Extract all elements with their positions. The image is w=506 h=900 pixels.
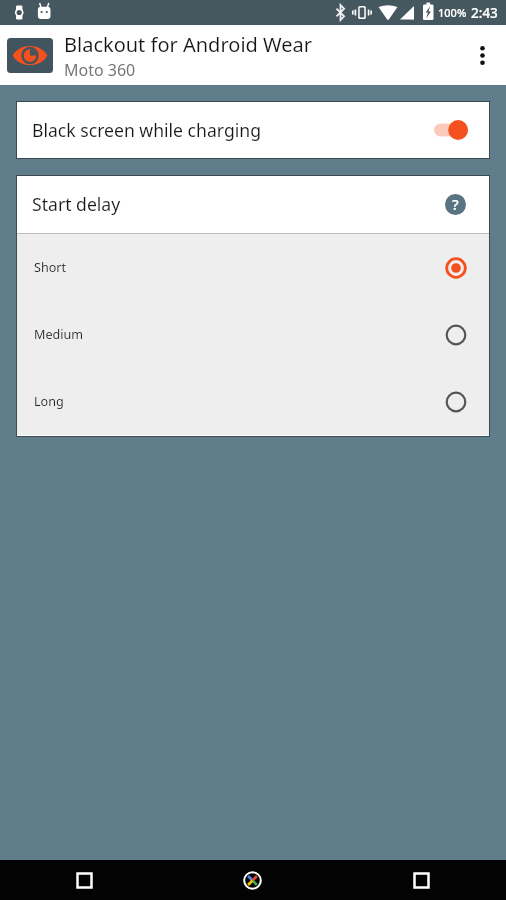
staticText: Black screen while charging <box>32 118 261 142</box>
button[interactable]: Medium <box>16 301 490 368</box>
button[interactable]: Back <box>0 860 168 900</box>
staticText: Long <box>34 393 64 410</box>
staticText: Medium <box>34 326 84 343</box>
staticText: Start delay <box>32 192 121 216</box>
button[interactable]: Recents <box>337 860 506 900</box>
staticText: Short <box>34 259 67 276</box>
button[interactable]: Black screen while charging <box>16 101 490 159</box>
button[interactable]: Home <box>168 860 337 900</box>
staticText: ? <box>452 194 459 214</box>
button[interactable]: Short <box>16 234 490 301</box>
button[interactable]: Long <box>16 368 490 435</box>
button[interactable]: More options <box>458 31 506 79</box>
staticText: Blackout for Android Wear <box>64 31 312 58</box>
button[interactable]: Start delay <box>16 175 490 233</box>
staticText: 100% <box>438 5 467 20</box>
button[interactable]: Help <box>442 191 468 217</box>
staticText: Moto 360 <box>64 59 136 81</box>
staticText: 2:43 <box>471 4 498 22</box>
